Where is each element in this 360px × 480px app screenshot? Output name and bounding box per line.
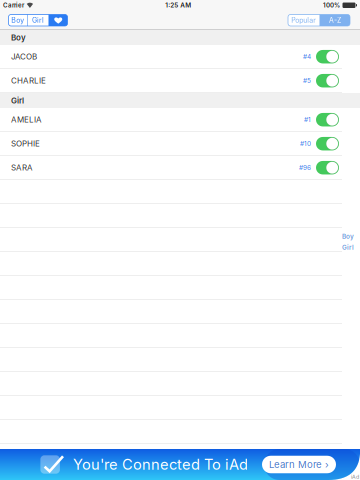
staticText: Boy (342, 233, 354, 240)
staticText: SARA (11, 163, 33, 173)
staticText: #4 (303, 53, 311, 60)
staticText: #5 (303, 77, 311, 84)
staticText: Girl (11, 96, 24, 105)
staticText: Popular (291, 16, 316, 24)
staticText: Carrier (3, 1, 24, 9)
button[interactable]: AMELIA (0, 108, 360, 132)
button[interactable]: SARA (0, 156, 360, 180)
staticText: iAd (351, 473, 359, 480)
staticText: Girl (342, 244, 354, 251)
staticText: 1:25 AM (165, 1, 191, 9)
staticText: Girl (32, 16, 44, 24)
staticText: AMELIA (11, 115, 42, 125)
button[interactable]: Girl (27, 14, 48, 26)
staticText: CHARLIE (11, 76, 46, 86)
button[interactable]: SOPHIE (0, 132, 360, 156)
staticText: SOPHIE (11, 139, 40, 149)
button[interactable]: A-Z (320, 14, 350, 26)
staticText: #96 (299, 164, 311, 171)
button[interactable]: Popular (288, 14, 319, 26)
staticText: You're Connected To iAd (73, 456, 248, 473)
button[interactable]: You're Connected To iAd (0, 449, 360, 480)
staticText: 100% (323, 1, 340, 9)
staticText: #1 (304, 116, 311, 123)
staticText: Boy (11, 16, 24, 24)
staticText: A-Z (329, 16, 341, 24)
staticText: Learn More › (269, 459, 329, 470)
staticText: JACOB (11, 52, 37, 62)
button[interactable]: Boy (336, 231, 360, 242)
button[interactable]: CHARLIE (0, 69, 360, 93)
button[interactable]: JACOB (0, 45, 360, 69)
button[interactable]: Boy (8, 14, 27, 26)
staticText: #10 (300, 140, 311, 147)
button[interactable]: Girl (336, 242, 360, 253)
staticText: Boy (11, 33, 26, 42)
button[interactable]: Favorites (49, 14, 67, 26)
